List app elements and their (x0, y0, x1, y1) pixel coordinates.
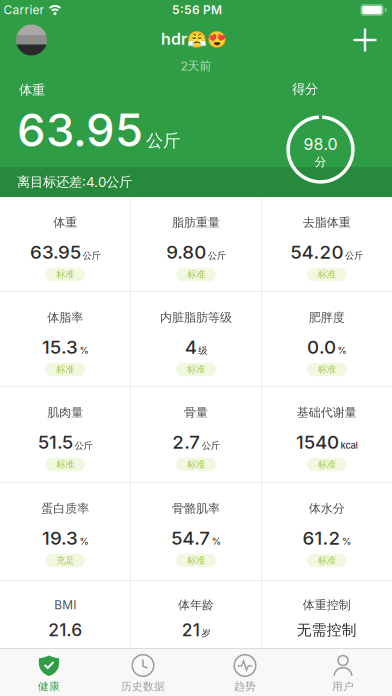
staticText: 15.3 (42, 336, 78, 358)
staticText: 标准 (318, 459, 336, 470)
staticText: Carrier (3, 3, 44, 17)
staticText: 5:56 PM (172, 3, 222, 17)
staticText: 21 (182, 620, 200, 640)
button[interactable]: 肥胖度 (262, 292, 392, 387)
staticText: 体脂率 (47, 310, 83, 325)
staticText: BMI (54, 598, 76, 612)
staticText: 标准 (56, 459, 74, 470)
staticText: 标准 (318, 555, 336, 566)
staticText: 标准 (318, 269, 336, 280)
staticText: 分 (314, 155, 326, 169)
button[interactable]: 体重 (0, 197, 130, 292)
staticText: 体重 (53, 215, 77, 230)
button[interactable]: 用户头像 (16, 24, 47, 55)
staticText: 基础代谢量 (297, 405, 357, 420)
staticText: 公斤 (146, 130, 180, 151)
button[interactable]: BMI (0, 581, 130, 648)
staticText: % (337, 345, 346, 356)
staticText: 标准 (56, 269, 74, 280)
button[interactable]: 骨量 (131, 387, 261, 483)
staticText: 标准 (318, 364, 336, 375)
staticText: 2天前 (180, 59, 211, 73)
staticText: 21.6 (48, 620, 82, 640)
staticText: 9.80 (166, 241, 206, 263)
staticText: 体年龄 (178, 598, 214, 612)
staticText: 去脂体重 (303, 215, 351, 230)
staticText: % (80, 536, 89, 547)
staticText: 充足 (56, 555, 74, 566)
button[interactable]: 体重控制 (262, 581, 392, 648)
staticText: 健康 (38, 680, 60, 693)
button[interactable]: 历史数据 (98, 648, 196, 696)
staticText: 公斤 (83, 250, 101, 261)
staticText: hdr😤😍 (161, 29, 227, 48)
staticText: 标准 (187, 555, 205, 566)
staticText: 51.5 (38, 431, 73, 453)
staticText: 蛋白质率 (41, 501, 89, 516)
staticText: 体水分 (309, 501, 345, 516)
staticText: 54.20 (290, 241, 343, 263)
staticText: 63.95 (30, 241, 81, 263)
staticText: 标准 (187, 364, 205, 375)
staticText: 标准 (187, 269, 205, 280)
staticText: % (212, 536, 221, 547)
staticText: 得分 (292, 81, 318, 97)
staticText: 1540 (296, 431, 339, 453)
button[interactable]: 用户 (294, 648, 392, 696)
staticText: 4 (185, 336, 197, 358)
button[interactable]: 骨骼肌率 (131, 483, 261, 581)
staticText: 离目标还差:4.0公斤 (17, 174, 132, 190)
staticText: 19.3 (42, 527, 78, 549)
staticText: 级 (198, 345, 207, 356)
button[interactable]: 基础代谢量 (262, 387, 392, 483)
button[interactable]: 去脂体重 (262, 197, 392, 292)
staticText: 肌肉量 (47, 405, 83, 420)
staticText: 体重控制 (303, 598, 351, 612)
staticText: 0.0 (307, 336, 336, 358)
staticText: 体重 (19, 82, 45, 98)
staticText: 63.95 (17, 103, 143, 157)
staticText: 98.0 (303, 135, 337, 154)
staticText: 骨量 (184, 405, 208, 420)
staticText: 标准 (187, 459, 205, 470)
staticText: 骨骼肌率 (172, 501, 220, 516)
staticText: 肥胖度 (309, 310, 345, 325)
staticText: 公斤 (202, 440, 220, 451)
button[interactable]: 添加记录 (353, 28, 377, 52)
button[interactable]: 脂肪重量 (131, 197, 261, 292)
staticText: 无需控制 (297, 621, 357, 639)
button[interactable]: 健康 (0, 648, 98, 696)
staticText: 趋势 (234, 680, 256, 693)
staticText: 54.7 (171, 527, 210, 549)
staticText: 公斤 (208, 250, 226, 261)
button[interactable]: 体水分 (262, 483, 392, 581)
staticText: 岁 (201, 627, 210, 639)
staticText: 公斤 (75, 440, 93, 451)
staticText: % (342, 536, 351, 547)
button[interactable]: 体年龄 (131, 581, 261, 648)
button[interactable]: 肌肉量 (0, 387, 130, 483)
staticText: 2.7 (172, 431, 200, 453)
button[interactable]: 体脂率 (0, 292, 130, 387)
staticText: 内脏脂肪等级 (160, 310, 232, 325)
staticText: 用户 (332, 680, 354, 693)
button[interactable]: 内脏脂肪等级 (131, 292, 261, 387)
staticText: 历史数据 (121, 680, 165, 693)
button[interactable]: 趋势 (196, 648, 294, 696)
button[interactable]: 蛋白质率 (0, 483, 130, 581)
staticText: 标准 (56, 364, 74, 375)
staticText: % (80, 345, 89, 356)
staticText: 脂肪重量 (172, 215, 220, 230)
staticText: 61.2 (302, 527, 340, 549)
staticText: kcal (340, 440, 357, 451)
staticText: 公斤 (345, 250, 363, 261)
